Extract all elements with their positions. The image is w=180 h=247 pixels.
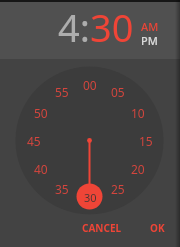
staticText: AM bbox=[141, 19, 159, 34]
staticText: 25 bbox=[111, 181, 125, 197]
staticText: 30 bbox=[84, 190, 97, 205]
staticText: 4: bbox=[58, 1, 90, 53]
button[interactable]: 15 bbox=[122, 130, 170, 152]
staticText: 20 bbox=[131, 161, 145, 177]
button[interactable]: 25 bbox=[94, 178, 142, 200]
button[interactable]: 20 bbox=[114, 158, 162, 180]
button[interactable]: 05 bbox=[94, 81, 142, 103]
staticText: 30 bbox=[90, 1, 134, 53]
button[interactable]: 40 bbox=[17, 158, 65, 180]
button[interactable]: 30 bbox=[66, 186, 114, 208]
button[interactable]: AM bbox=[126, 15, 174, 37]
staticText: 45 bbox=[27, 133, 41, 149]
button[interactable]: 55 bbox=[38, 81, 86, 103]
staticText: 35 bbox=[55, 181, 69, 197]
staticText: PM bbox=[141, 33, 158, 48]
staticText: CANCEL bbox=[82, 221, 122, 235]
button[interactable]: 45 bbox=[10, 130, 58, 152]
staticText: 40 bbox=[34, 161, 48, 177]
staticText: 50 bbox=[34, 105, 48, 121]
button[interactable]: PM bbox=[125, 29, 173, 51]
button[interactable]: 50 bbox=[17, 102, 65, 124]
staticText: OK bbox=[150, 221, 165, 235]
staticText: 10 bbox=[131, 105, 145, 121]
button[interactable]: 10 bbox=[114, 102, 162, 124]
button[interactable]: CANCEL bbox=[78, 217, 126, 239]
staticText: 05 bbox=[111, 84, 125, 100]
staticText: 00 bbox=[83, 77, 97, 93]
button[interactable]: 35 bbox=[38, 178, 86, 200]
staticText: 15 bbox=[139, 133, 153, 149]
staticText: 55 bbox=[55, 84, 69, 100]
button[interactable]: OK bbox=[133, 217, 180, 239]
button[interactable]: 00 bbox=[66, 74, 114, 96]
